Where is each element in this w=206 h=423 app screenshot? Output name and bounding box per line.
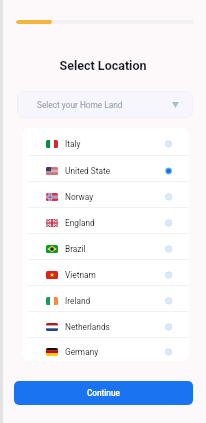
button[interactable]: Select your Home Land bbox=[17, 91, 193, 118]
other: Not selected bbox=[165, 297, 173, 305]
staticText: Vietnam bbox=[65, 270, 96, 280]
staticText: Continue bbox=[87, 388, 120, 398]
staticText: Italy bbox=[65, 139, 81, 149]
button[interactable]: Brazil bbox=[22, 234, 189, 259]
button[interactable]: Norway bbox=[22, 182, 189, 207]
button[interactable]: England bbox=[22, 208, 189, 233]
staticText: Select Location bbox=[0, 58, 206, 73]
button[interactable]: Ireland bbox=[22, 286, 189, 311]
other: Not selected bbox=[165, 323, 173, 331]
staticText: Netherlands bbox=[65, 322, 110, 332]
other: Not selected bbox=[165, 271, 173, 279]
staticText: Germany bbox=[65, 347, 99, 357]
staticText: Norway bbox=[65, 192, 94, 202]
other: Not selected bbox=[165, 219, 173, 227]
other: Not selected bbox=[165, 348, 173, 356]
staticText: Select your Home Land bbox=[37, 100, 123, 110]
staticText: United State bbox=[65, 166, 111, 176]
other: Not selected bbox=[165, 193, 173, 201]
other: Not selected bbox=[165, 245, 173, 253]
other: Not selected bbox=[165, 140, 173, 148]
button[interactable]: Vietnam bbox=[22, 260, 189, 285]
staticText: Brazil bbox=[65, 244, 86, 254]
button[interactable]: Continue bbox=[14, 381, 193, 405]
other: Open dropdown bbox=[172, 102, 179, 108]
button[interactable]: Germany bbox=[22, 338, 189, 361]
other: Selected bbox=[165, 167, 173, 175]
button[interactable]: Netherlands bbox=[22, 312, 189, 337]
staticText: England bbox=[65, 218, 95, 228]
button[interactable]: United State bbox=[22, 156, 189, 181]
staticText: Ireland bbox=[65, 296, 91, 306]
button[interactable]: Italy bbox=[22, 128, 189, 155]
